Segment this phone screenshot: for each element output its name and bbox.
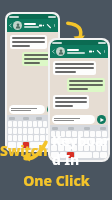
staticText: Keyboard In <box>52 131 112 169</box>
button[interactable] <box>46 128 51 134</box>
button[interactable] <box>78 131 83 137</box>
button[interactable] <box>68 127 74 130</box>
button[interactable] <box>17 142 22 148</box>
button[interactable] <box>23 128 27 134</box>
button[interactable] <box>8 121 12 127</box>
button[interactable] <box>13 121 17 127</box>
button[interactable]: Back <box>9 19 56 32</box>
button[interactable]: Switch keyboard <box>67 152 74 158</box>
button[interactable] <box>84 127 90 130</box>
button[interactable] <box>23 121 27 127</box>
button[interactable] <box>8 135 12 141</box>
button[interactable] <box>11 105 43 114</box>
button[interactable] <box>51 131 55 137</box>
button[interactable] <box>45 142 50 148</box>
button[interactable] <box>34 128 39 134</box>
button[interactable]: Back <box>50 40 108 160</box>
button[interactable]: Video call <box>89 49 94 54</box>
button[interactable]: Back <box>52 45 106 58</box>
button[interactable] <box>23 135 27 141</box>
button[interactable] <box>51 138 57 144</box>
button[interactable]: Switch keyboard <box>23 142 29 148</box>
button[interactable]: More options <box>53 24 56 27</box>
button[interactable] <box>40 128 45 134</box>
button[interactable]: Call <box>96 49 101 54</box>
button[interactable] <box>12 37 45 47</box>
button[interactable] <box>30 142 44 148</box>
button[interactable] <box>8 142 16 148</box>
staticText: One Click <box>23 171 90 190</box>
button[interactable] <box>18 121 22 127</box>
button[interactable] <box>84 131 89 137</box>
button[interactable] <box>72 131 77 137</box>
button[interactable] <box>54 115 93 124</box>
button[interactable] <box>18 128 22 134</box>
button[interactable] <box>90 131 95 137</box>
button[interactable] <box>28 128 33 134</box>
button[interactable] <box>9 117 15 120</box>
button[interactable] <box>52 128 57 134</box>
button[interactable] <box>72 145 77 151</box>
button[interactable]: Send <box>97 115 106 124</box>
button[interactable] <box>100 127 106 130</box>
button[interactable] <box>56 131 60 137</box>
button[interactable] <box>66 131 71 137</box>
button[interactable] <box>61 131 65 137</box>
button[interactable] <box>36 117 42 120</box>
other: Switch arrow <box>66 21 88 43</box>
button[interactable]: Send <box>47 105 56 114</box>
button[interactable] <box>38 121 42 127</box>
button[interactable] <box>52 127 58 130</box>
button[interactable] <box>102 131 107 137</box>
button[interactable] <box>48 121 52 127</box>
button[interactable] <box>33 121 37 127</box>
button[interactable] <box>90 138 95 144</box>
button[interactable]: Call <box>46 23 51 28</box>
button[interactable] <box>34 135 39 141</box>
button[interactable] <box>13 128 17 134</box>
button[interactable] <box>53 121 57 127</box>
button[interactable] <box>69 80 103 90</box>
button[interactable] <box>100 152 107 158</box>
button[interactable] <box>52 135 57 141</box>
button[interactable] <box>46 135 51 141</box>
button[interactable]: Video call <box>39 23 44 28</box>
button[interactable] <box>51 145 57 151</box>
button[interactable]: More options <box>103 50 106 53</box>
button[interactable] <box>43 121 47 127</box>
button[interactable] <box>13 135 17 141</box>
button[interactable] <box>28 135 33 141</box>
other: Back <box>52 50 55 53</box>
button[interactable] <box>40 135 45 141</box>
button[interactable] <box>51 142 57 148</box>
button[interactable] <box>55 63 94 73</box>
button[interactable] <box>23 117 29 120</box>
button[interactable] <box>24 54 53 64</box>
button[interactable] <box>51 152 59 158</box>
button[interactable] <box>55 97 87 107</box>
button[interactable] <box>8 128 12 134</box>
button[interactable]: Back <box>7 14 58 150</box>
button[interactable] <box>96 131 101 137</box>
button[interactable] <box>28 121 32 127</box>
staticText: Switch <box>0 141 52 160</box>
button[interactable] <box>18 135 22 141</box>
button[interactable] <box>50 117 56 120</box>
